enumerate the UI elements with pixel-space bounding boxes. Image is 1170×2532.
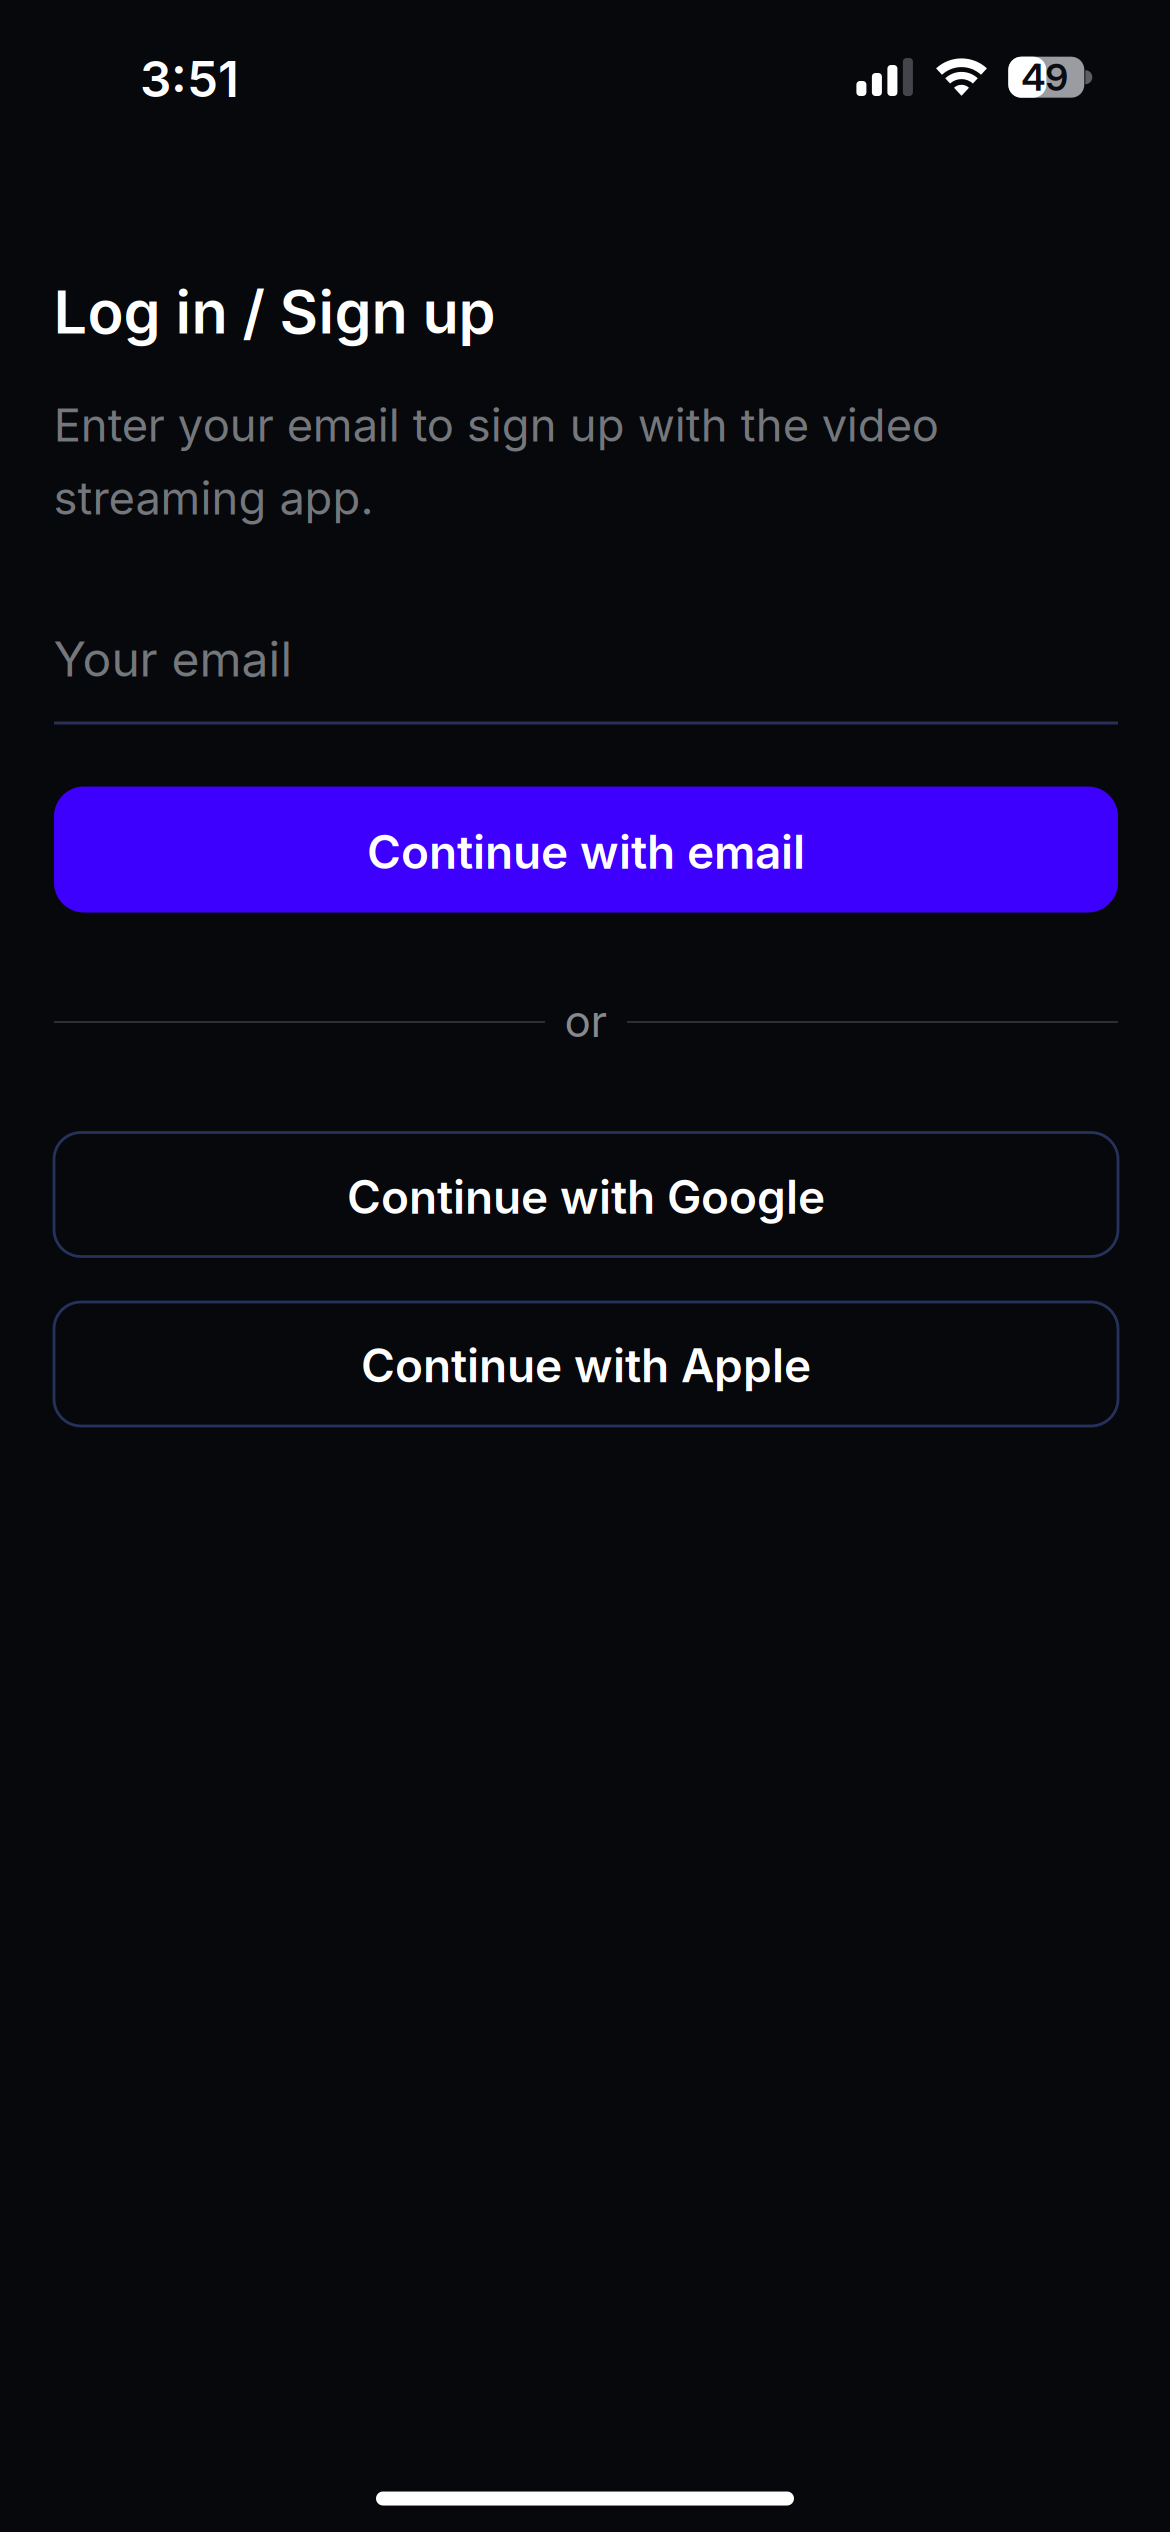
- staticText: Continue with Apple: [361, 1338, 811, 1393]
- staticText: or: [564, 994, 607, 1048]
- staticText: 49: [1021, 55, 1068, 100]
- button[interactable]: Continue with Apple: [54, 1302, 1118, 1426]
- staticText: Your email: [53, 630, 292, 688]
- staticText: Continue with Google: [347, 1169, 825, 1225]
- button[interactable]: Continue with email: [54, 786, 1118, 912]
- staticText: Continue with email: [367, 824, 805, 880]
- button[interactable]: Continue with Google: [54, 1132, 1118, 1256]
- button[interactable]: Your email: [54, 620, 1118, 724]
- staticText: streaming app.: [53, 471, 373, 525]
- staticText: Enter your email to sign up with the vid…: [54, 398, 939, 452]
- staticText: 3:51: [140, 49, 239, 109]
- staticText: Log in / Sign up: [53, 276, 495, 348]
